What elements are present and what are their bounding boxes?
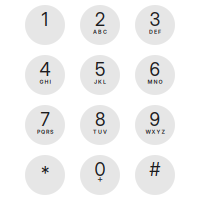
staticText: W: [145, 129, 150, 135]
staticText: #: [149, 159, 160, 180]
staticText: 4: [39, 59, 50, 80]
button[interactable]: 4: [25, 55, 65, 95]
staticText: J: [94, 79, 97, 85]
button[interactable]: #: [135, 155, 175, 195]
staticText: F: [158, 29, 161, 35]
button[interactable]: *: [25, 155, 65, 195]
staticText: E: [154, 29, 157, 35]
staticText: 3: [149, 9, 160, 30]
staticText: O: [158, 79, 162, 85]
button[interactable]: 6: [135, 55, 175, 95]
staticText: K: [98, 79, 102, 85]
staticText: S: [50, 129, 53, 135]
staticText: D: [149, 29, 153, 35]
staticText: 0: [94, 159, 105, 180]
staticText: R: [46, 129, 49, 135]
staticText: 7: [40, 109, 49, 130]
staticText: +: [97, 173, 103, 184]
staticText: H: [44, 79, 48, 85]
staticText: Z: [161, 129, 164, 135]
staticText: P: [37, 129, 40, 135]
button[interactable]: 5: [80, 55, 120, 95]
button[interactable]: 9: [135, 105, 175, 145]
staticText: Y: [156, 129, 160, 135]
button[interactable]: 0: [80, 155, 120, 195]
button[interactable]: 1: [25, 5, 65, 45]
staticText: U: [98, 129, 102, 135]
staticText: T: [93, 129, 97, 135]
staticText: 6: [149, 59, 160, 80]
staticText: 1: [41, 9, 48, 30]
staticText: V: [103, 129, 107, 135]
button[interactable]: 7: [25, 105, 65, 145]
staticText: M: [147, 79, 152, 85]
button[interactable]: 3: [135, 5, 175, 45]
staticText: 5: [95, 59, 105, 80]
staticText: L: [103, 79, 106, 85]
button[interactable]: 8: [80, 105, 120, 145]
staticText: B: [98, 29, 102, 35]
staticText: G: [39, 79, 43, 85]
staticText: A: [93, 29, 97, 35]
staticText: 8: [95, 109, 105, 130]
staticText: Q: [41, 129, 45, 135]
staticText: 9: [149, 109, 160, 130]
staticText: C: [103, 29, 107, 35]
staticText: 2: [95, 9, 105, 30]
staticText: X: [151, 129, 155, 135]
button[interactable]: 2: [80, 5, 120, 45]
staticText: *: [41, 163, 49, 184]
staticText: N: [153, 79, 157, 85]
